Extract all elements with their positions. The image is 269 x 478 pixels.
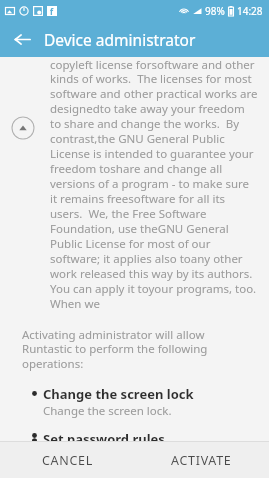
staticText: f (50, 6, 54, 16)
staticText: 14:28 (237, 4, 263, 18)
button[interactable]: Collapse license text (11, 116, 35, 140)
button[interactable]: Change the screen lock (0, 385, 269, 419)
staticText: Change the screen lock. (43, 403, 172, 419)
button[interactable]: ACTIVATE (134, 442, 269, 478)
button[interactable]: Set password rules (0, 430, 269, 441)
staticText: CANCEL (42, 452, 93, 469)
staticText: Set password rules (43, 430, 165, 441)
staticText: ACTIVATE (171, 452, 232, 469)
button[interactable]: CANCEL (0, 442, 134, 478)
staticText: Activating administrator will allow Runt… (22, 327, 255, 372)
staticText: 98% (205, 4, 225, 18)
staticText: copyleft license forsoftware and other k… (50, 57, 258, 312)
button[interactable]: Back (7, 24, 37, 54)
staticText: Device administrator (44, 29, 196, 50)
staticText: Change the screen lock (43, 385, 194, 403)
